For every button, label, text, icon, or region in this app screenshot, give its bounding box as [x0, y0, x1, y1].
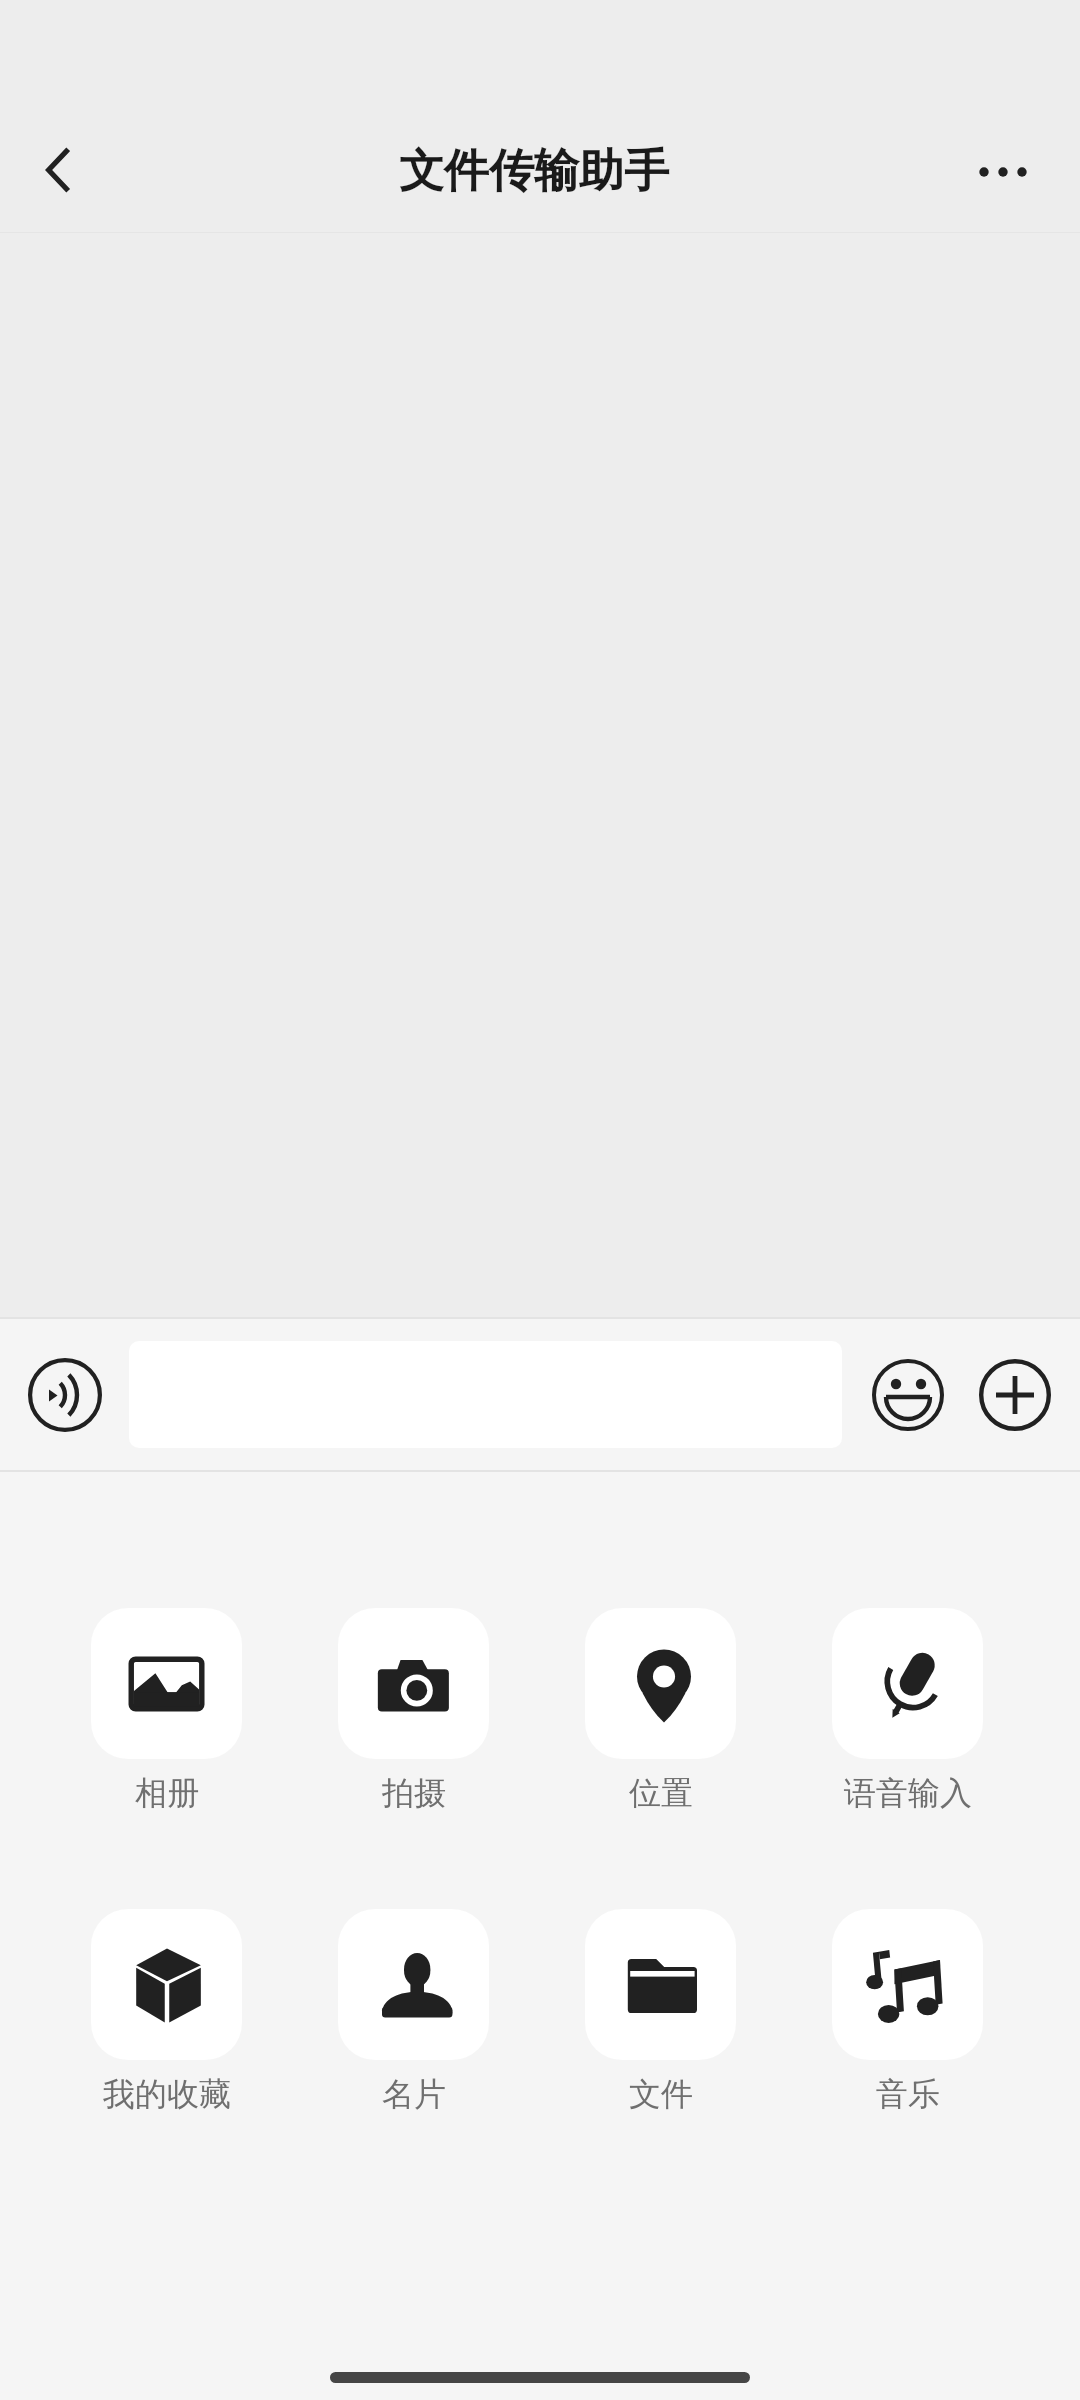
staticText: 音乐 — [876, 2074, 940, 2114]
button[interactable]: Emoji — [861, 1348, 955, 1442]
staticText: 文件传输助手 — [399, 143, 669, 200]
button[interactable]: 语音输入 — [832, 1608, 983, 1813]
staticText: 语音输入 — [844, 1773, 972, 1813]
button[interactable]: Voice message — [18, 1348, 112, 1442]
button[interactable]: 名片 — [338, 1909, 489, 2114]
button[interactable]: 文件 — [585, 1909, 736, 2114]
staticText: 我的收藏 — [103, 2074, 231, 2114]
button[interactable]: 拍摄 — [338, 1608, 489, 1813]
button[interactable]: 音乐 — [832, 1909, 983, 2114]
staticText: 拍摄 — [382, 1773, 446, 1813]
button[interactable]: Back — [3, 121, 99, 217]
button[interactable]: More options — [955, 121, 1051, 217]
button[interactable]: 位置 — [585, 1608, 736, 1813]
button[interactable]: More — [968, 1348, 1062, 1442]
staticText: 名片 — [382, 2074, 446, 2114]
staticText: 相册 — [135, 1773, 199, 1813]
button[interactable]: 相册 — [91, 1608, 242, 1813]
staticText: 文件 — [629, 2074, 693, 2114]
staticText: 位置 — [629, 1773, 693, 1813]
button[interactable]: 我的收藏 — [91, 1909, 242, 2114]
